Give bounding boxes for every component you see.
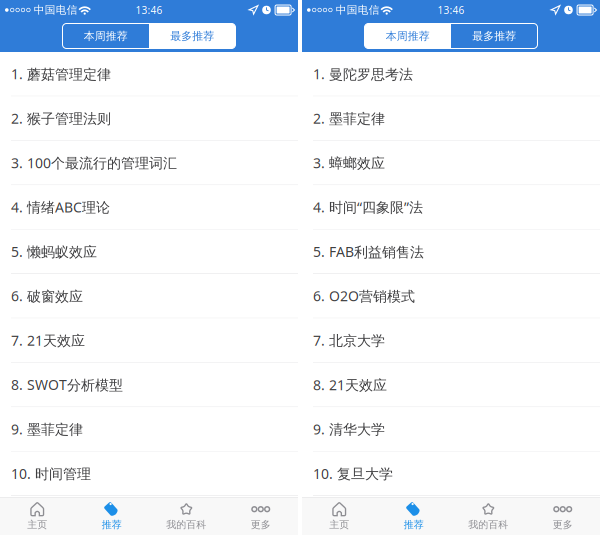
- staticText: 4. 时间“四象限”法: [313, 198, 423, 217]
- staticText: 本周推荐: [84, 29, 128, 43]
- button[interactable]: 本周推荐: [364, 23, 451, 48]
- button[interactable]: 8. 21天效应: [302, 363, 600, 407]
- staticText: 2. 猴子管理法则: [11, 109, 111, 128]
- button[interactable]: 最多推荐: [451, 23, 537, 48]
- button[interactable]: 推荐: [376, 497, 451, 535]
- staticText: 我的百科: [468, 518, 508, 531]
- staticText: 10. 复旦大学: [313, 464, 393, 483]
- button[interactable]: 4. 情绪ABC理论: [0, 185, 298, 230]
- button[interactable]: 主页: [302, 497, 376, 535]
- button[interactable]: 本周推荐: [62, 23, 149, 48]
- button[interactable]: 2. 猴子管理法则: [0, 96, 298, 141]
- button[interactable]: 1. 曼陀罗思考法: [302, 52, 600, 96]
- staticText: 8. SWOT分析模型: [11, 375, 123, 394]
- staticText: 本周推荐: [386, 29, 430, 43]
- staticText: 3. 蟑螂效应: [313, 153, 385, 172]
- button[interactable]: 6. 破窗效应: [0, 274, 298, 318]
- staticText: 1. 曼陀罗思考法: [313, 64, 413, 83]
- button[interactable]: 3. 100个最流行的管理词汇: [0, 141, 298, 185]
- button[interactable]: 10. 时间管理: [0, 452, 298, 496]
- button[interactable]: 5. 懒蚂蚁效应: [0, 230, 298, 274]
- staticText: 更多: [251, 518, 271, 531]
- staticText: 中国电信: [336, 3, 380, 17]
- staticText: 最多推荐: [170, 29, 214, 43]
- staticText: 13:46: [135, 3, 162, 17]
- staticText: 4. 情绪ABC理论: [11, 198, 110, 217]
- button[interactable]: 主页: [0, 497, 74, 535]
- button[interactable]: 5. FAB利益销售法: [302, 230, 600, 274]
- staticText: 推荐: [102, 518, 122, 531]
- button[interactable]: 6. O2O营销模式: [302, 274, 600, 318]
- staticText: 我的百科: [166, 518, 206, 531]
- button[interactable]: 4. 时间“四象限”法: [302, 185, 600, 230]
- button[interactable]: 8. SWOT分析模型: [0, 363, 298, 407]
- button[interactable]: 2. 墨菲定律: [302, 96, 600, 141]
- button[interactable]: 9. 清华大学: [302, 407, 600, 452]
- button[interactable]: 7. 21天效应: [0, 318, 298, 363]
- staticText: 更多: [553, 518, 573, 531]
- button[interactable]: 推荐: [74, 497, 149, 535]
- button[interactable]: 更多: [525, 497, 600, 535]
- button[interactable]: 7. 北京大学: [302, 318, 600, 363]
- button[interactable]: 更多: [223, 497, 298, 535]
- staticText: 1. 蘑菇管理定律: [11, 64, 111, 83]
- staticText: 5. FAB利益销售法: [313, 242, 424, 261]
- staticText: 10. 时间管理: [11, 464, 91, 483]
- staticText: 5. 懒蚂蚁效应: [11, 242, 97, 261]
- staticText: 8. 21天效应: [313, 375, 387, 394]
- staticText: 9. 墨菲定律: [11, 420, 83, 439]
- staticText: 主页: [27, 518, 47, 531]
- button[interactable]: 最多推荐: [149, 23, 235, 48]
- staticText: 中国电信: [34, 3, 78, 17]
- button[interactable]: 10. 复旦大学: [302, 452, 600, 496]
- staticText: 7. 北京大学: [313, 331, 385, 350]
- staticText: 2. 墨菲定律: [313, 109, 385, 128]
- staticText: 最多推荐: [472, 29, 516, 43]
- staticText: 6. O2O营销模式: [313, 286, 415, 305]
- button[interactable]: 我的百科: [149, 497, 223, 535]
- staticText: 13:46: [437, 3, 464, 17]
- button[interactable]: 9. 墨菲定律: [0, 407, 298, 452]
- staticText: 推荐: [404, 518, 424, 531]
- staticText: 3. 100个最流行的管理词汇: [11, 153, 177, 172]
- button[interactable]: 1. 蘑菇管理定律: [0, 52, 298, 96]
- staticText: 9. 清华大学: [313, 420, 385, 439]
- button[interactable]: 我的百科: [451, 497, 525, 535]
- staticText: 7. 21天效应: [11, 331, 85, 350]
- staticText: 6. 破窗效应: [11, 286, 83, 305]
- button[interactable]: 3. 蟑螂效应: [302, 141, 600, 185]
- staticText: 主页: [329, 518, 349, 531]
